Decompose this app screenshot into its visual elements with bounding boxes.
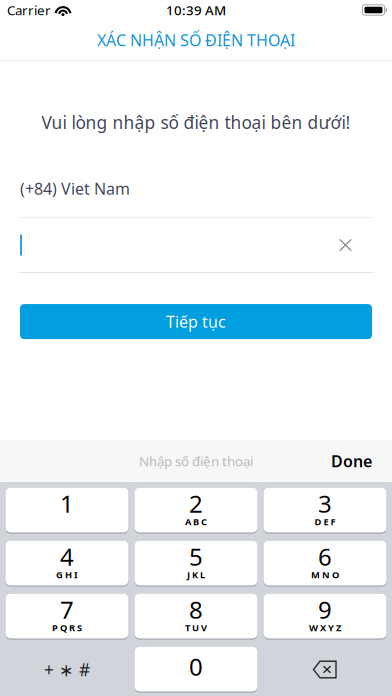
- staticText: 0: [189, 650, 203, 682]
- staticText: Nhập số điện thoại: [139, 452, 253, 470]
- staticText: W X Y Z: [309, 621, 341, 634]
- staticText: 4: [60, 540, 74, 572]
- staticText: 6: [318, 540, 332, 572]
- staticText: + ∗ #: [44, 658, 90, 681]
- staticText: 8: [189, 593, 203, 625]
- staticText: D E F: [314, 515, 335, 528]
- button[interactable]: 6: [263, 541, 386, 586]
- button[interactable]: 0: [134, 647, 257, 692]
- button[interactable]: 1: [5, 488, 128, 533]
- button[interactable]: Symbols: [5, 647, 128, 692]
- staticText: M N O: [311, 568, 339, 581]
- button[interactable]: Tiếp tục: [20, 304, 372, 339]
- button[interactable]: 7: [5, 594, 128, 639]
- staticText: A B C: [185, 515, 207, 528]
- staticText: (+84) Viet Nam: [20, 178, 130, 199]
- staticText: 5: [189, 540, 203, 572]
- staticText: 9: [318, 593, 332, 625]
- button[interactable]: 2: [134, 488, 257, 533]
- staticText: 3: [318, 487, 332, 519]
- staticText: Vui lòng nhập số điện thoại bên dưới!: [41, 111, 350, 134]
- button[interactable]: 5: [134, 541, 257, 586]
- staticText: Tiếp tục: [166, 311, 226, 332]
- button[interactable]: 3: [263, 488, 386, 533]
- button[interactable]: Clear text: [339, 239, 352, 252]
- staticText: 10:39 AM: [166, 1, 226, 19]
- staticText: J K L: [187, 568, 205, 581]
- staticText: T U V: [185, 621, 207, 634]
- staticText: P Q R S: [52, 621, 82, 634]
- button[interactable]: 8: [134, 594, 257, 639]
- button[interactable]: Delete: [263, 647, 386, 692]
- button[interactable]: 4: [5, 541, 128, 586]
- staticText: Done: [331, 450, 372, 472]
- staticText: 7: [60, 593, 74, 625]
- staticText: Carrier: [7, 1, 51, 19]
- button[interactable]: 9: [263, 594, 386, 639]
- staticText: 2: [189, 487, 203, 519]
- staticText: 1: [60, 487, 74, 519]
- staticText: XÁC NHẬN SỐ ĐIỆN THOẠI: [97, 29, 295, 51]
- button[interactable]: Done: [331, 450, 372, 472]
- staticText: G H I: [56, 568, 78, 581]
